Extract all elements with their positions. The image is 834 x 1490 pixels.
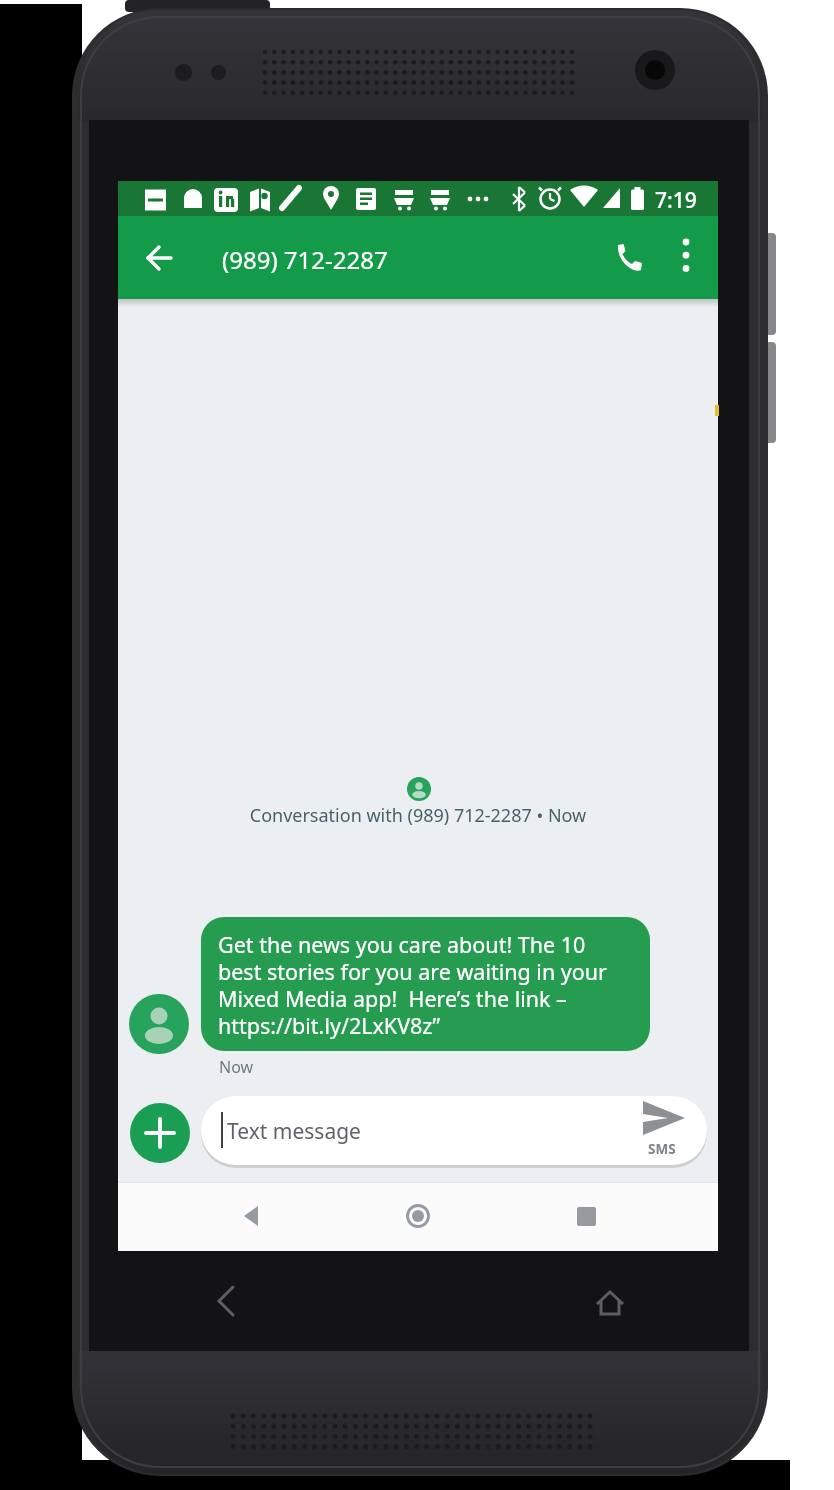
button[interactable] bbox=[610, 239, 648, 277]
button[interactable] bbox=[640, 1098, 692, 1142]
button[interactable] bbox=[130, 1103, 190, 1163]
staticText: Get the news you care about! The 10 bbox=[218, 930, 586, 959]
button[interactable] bbox=[577, 1207, 596, 1226]
button[interactable] bbox=[207, 1281, 247, 1321]
button[interactable] bbox=[201, 1096, 707, 1165]
button[interactable] bbox=[238, 1202, 266, 1230]
staticText: https://bit.ly/2LxKV8z” bbox=[218, 1011, 441, 1040]
button[interactable] bbox=[140, 239, 178, 277]
button[interactable] bbox=[672, 236, 700, 280]
button[interactable] bbox=[590, 1283, 630, 1323]
staticText: (989) 712-2287 bbox=[222, 243, 388, 276]
staticText: Text message bbox=[227, 1117, 361, 1146]
staticText: Conversation with (989) 712-2287 • Now bbox=[118, 803, 718, 828]
button[interactable] bbox=[404, 1202, 432, 1230]
staticText: Now bbox=[219, 1056, 254, 1078]
staticText: best stories for you are waiting in your bbox=[218, 957, 607, 986]
staticText: SMS bbox=[648, 1140, 676, 1158]
staticText: Mixed Media app! Here’s the link – bbox=[218, 984, 567, 1013]
staticText: 7:19 bbox=[655, 186, 697, 215]
